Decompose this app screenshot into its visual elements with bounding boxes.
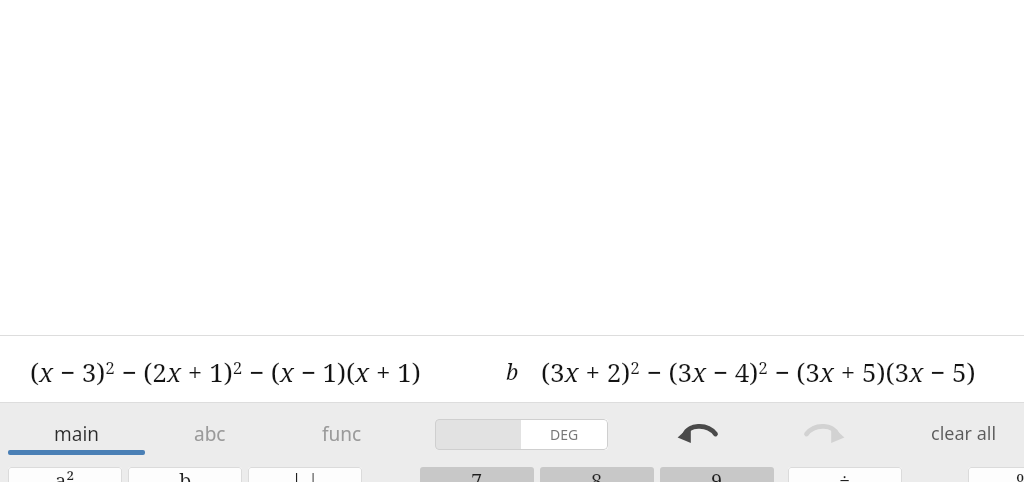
button[interactable]: % <box>968 467 1024 482</box>
button[interactable]: (x − 3)2 − (2x + 1)2 − (x − 1)(x + 1) <box>0 336 1024 402</box>
staticText: | | <box>291 467 319 482</box>
button[interactable]: ÷ <box>788 467 902 482</box>
button[interactable]: b <box>128 467 242 482</box>
button[interactable]: 7 <box>420 467 534 482</box>
button[interactable]: Undo <box>663 413 731 455</box>
staticText: (3x + 2)2 − (3x − 4)2 − (3x + 5)(3x − 5) <box>541 354 976 389</box>
staticText: 7 <box>471 467 483 482</box>
button[interactable]: main <box>8 403 145 458</box>
staticText: % <box>1016 467 1024 482</box>
button[interactable]: | | <box>248 467 362 482</box>
staticText: a² <box>55 467 75 482</box>
staticText: 9 <box>711 467 723 482</box>
button[interactable]: 8 <box>540 467 654 482</box>
staticText: b <box>506 356 519 386</box>
staticText: DEG <box>550 425 579 444</box>
staticText: main <box>54 421 100 447</box>
button[interactable]: Redo <box>791 413 859 455</box>
button[interactable]: clear all <box>912 411 1016 455</box>
button[interactable]: a² <box>8 467 122 482</box>
staticText: func <box>322 421 362 447</box>
button[interactable]: abc <box>145 403 275 458</box>
staticText: ÷ <box>839 467 851 482</box>
button[interactable]: DEG <box>435 419 608 450</box>
button[interactable]: func <box>278 403 406 458</box>
staticText: clear all <box>931 421 997 446</box>
staticText: b <box>179 467 192 482</box>
staticText: (x − 3)2 − (2x + 1)2 − (x − 1)(x + 1) <box>30 354 421 389</box>
button[interactable]: 9 <box>660 467 774 482</box>
staticText: 8 <box>591 467 603 482</box>
staticText: abc <box>194 421 226 447</box>
